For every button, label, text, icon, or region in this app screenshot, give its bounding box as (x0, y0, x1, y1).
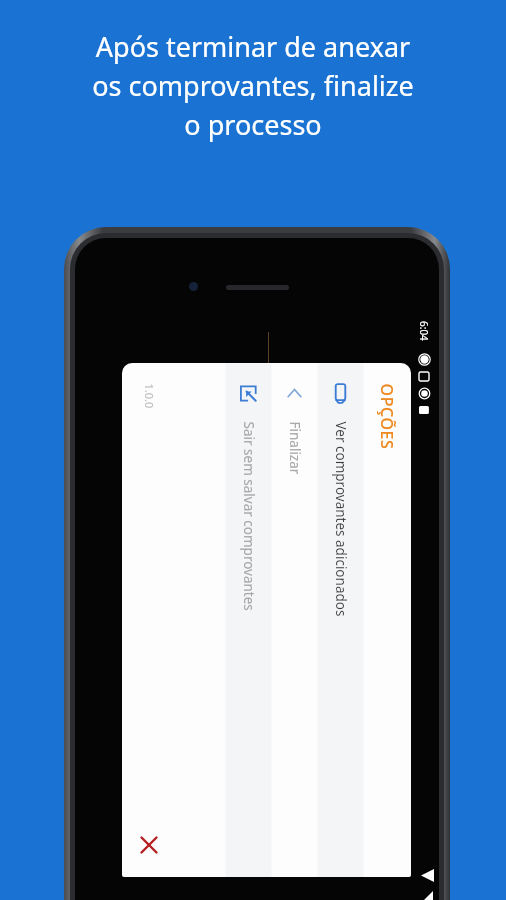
staticText: OPÇÕES (375, 383, 397, 450)
button[interactable]: Finalizar (271, 363, 317, 877)
staticText: 1.0.0 (141, 383, 156, 408)
staticText: Sair sem salvar comprovantes (239, 421, 257, 611)
staticText: Finalizar (285, 421, 303, 474)
button[interactable]: Sair sem salvar comprovantes (225, 363, 271, 877)
staticText: 6:04 (417, 321, 431, 341)
button[interactable]: Ver comprovantes adicionados (317, 363, 363, 877)
staticText: Após terminar de anexar os comprovantes,… (92, 28, 414, 143)
staticText: Ver comprovantes adicionados (331, 421, 349, 616)
button[interactable]: Fechar (134, 829, 164, 859)
